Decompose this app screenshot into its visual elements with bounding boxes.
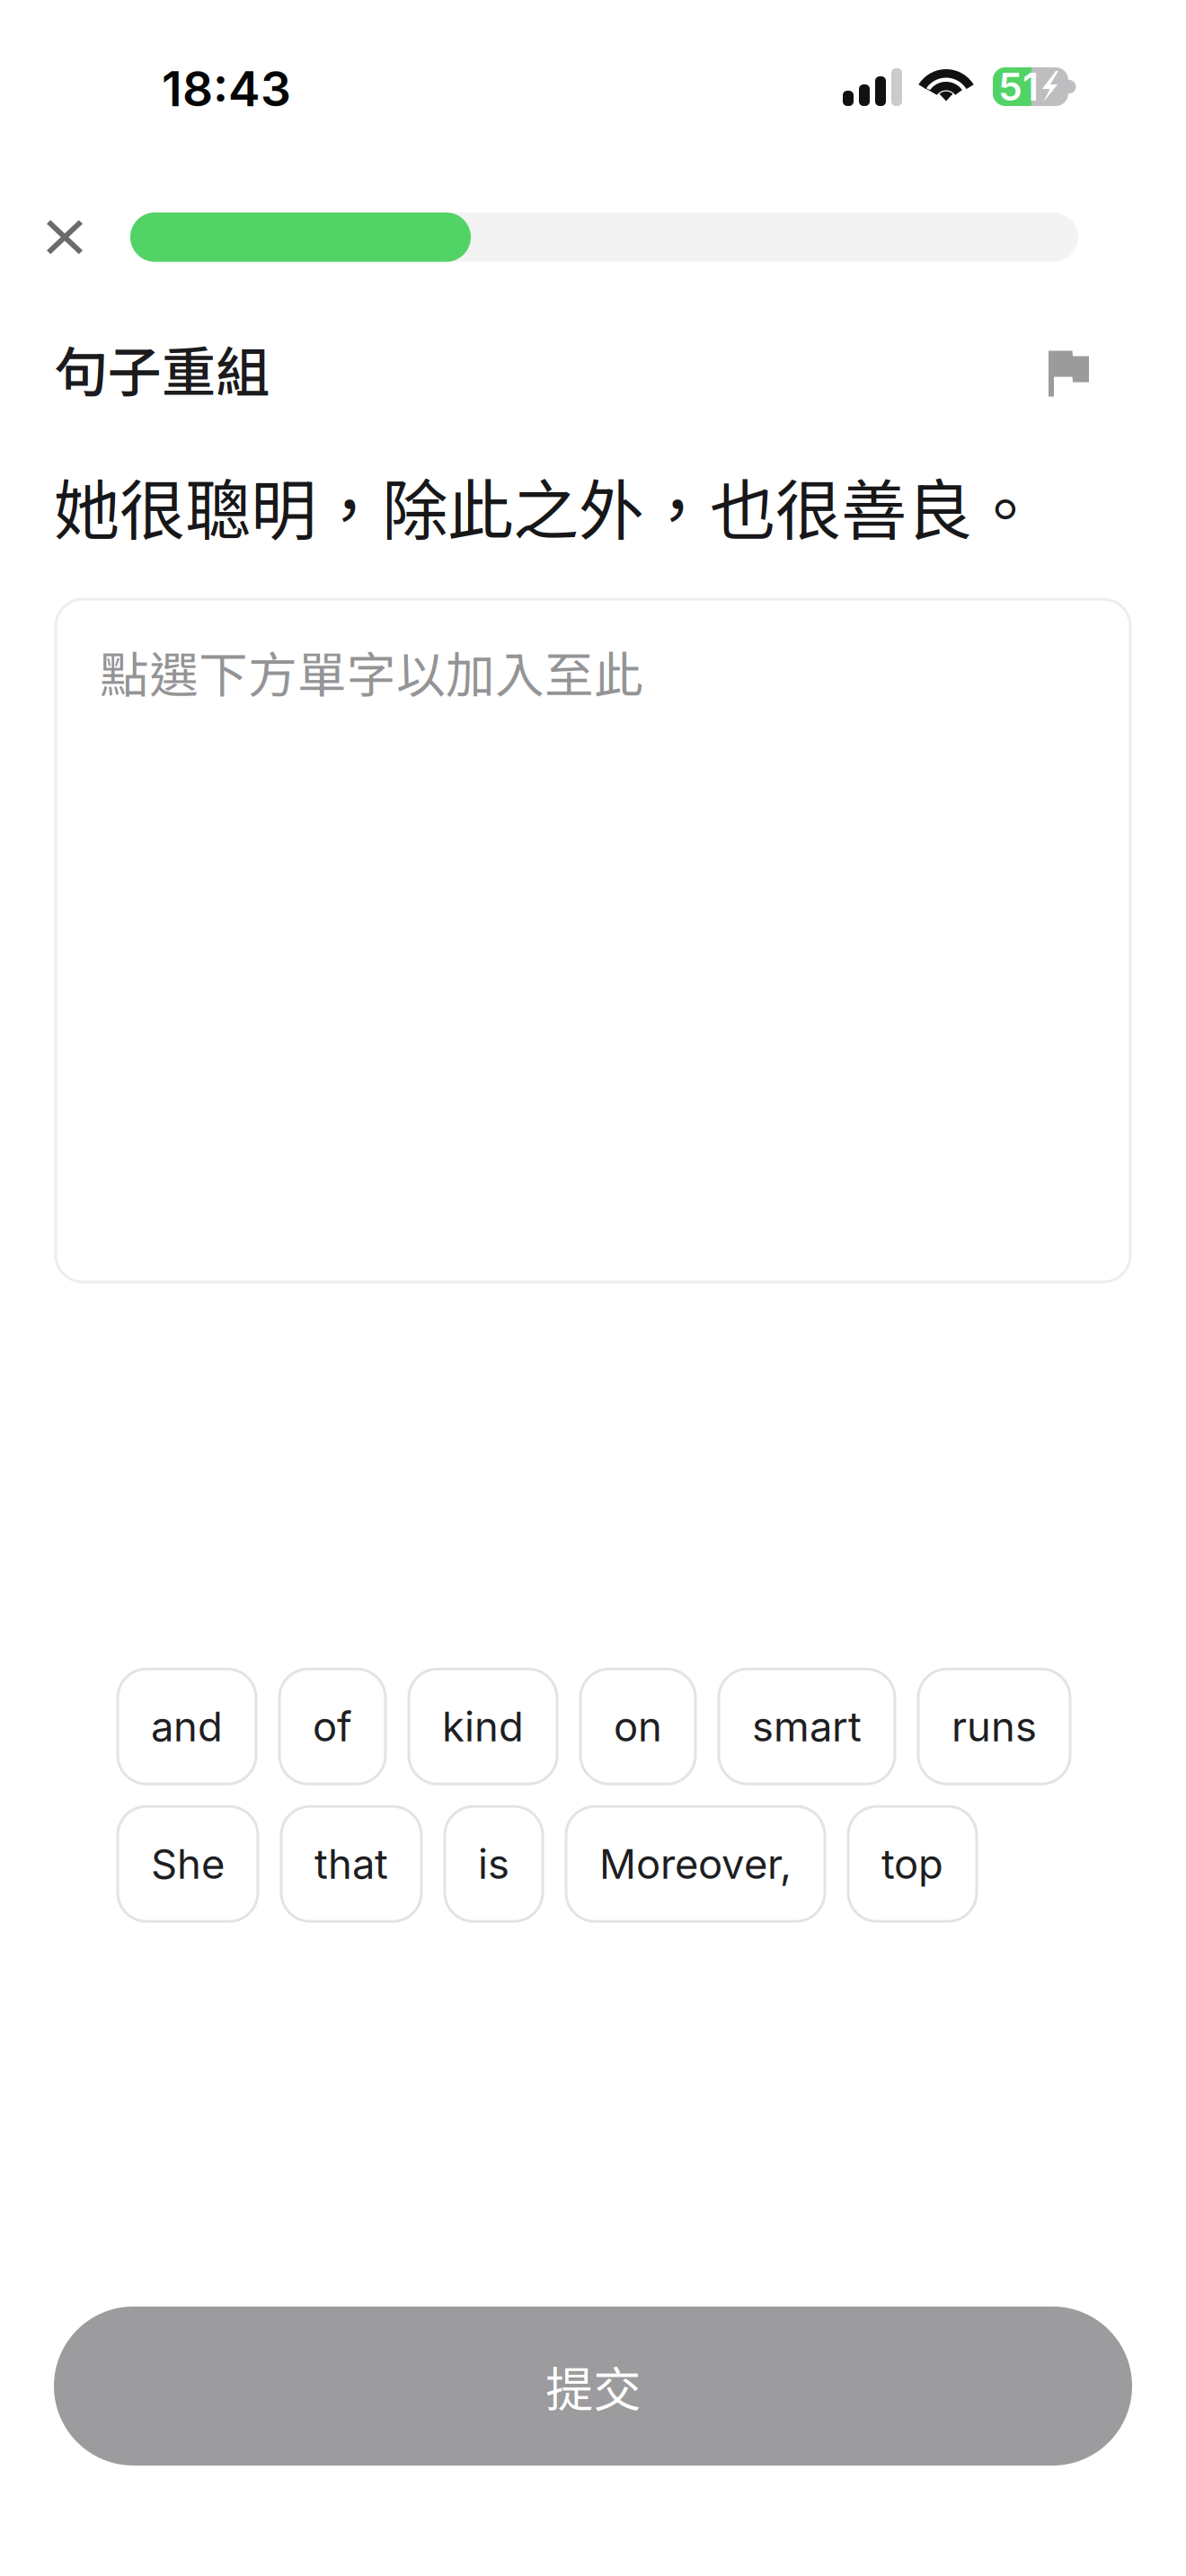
- staticText: 51: [998, 64, 1039, 110]
- button[interactable]: She: [118, 1806, 258, 1921]
- staticText: 點選下方單字以加入至此: [100, 636, 643, 707]
- button[interactable]: top: [848, 1806, 977, 1921]
- button[interactable]: runs: [918, 1669, 1070, 1784]
- button[interactable]: smart: [719, 1669, 895, 1784]
- staticText: 她很聰明，除此之外，也很善良。: [54, 458, 1038, 553]
- button[interactable]: Close: [47, 197, 130, 278]
- staticText: top: [881, 1839, 943, 1889]
- button[interactable]: kind: [409, 1669, 557, 1784]
- staticText: 提交: [545, 2351, 641, 2421]
- staticText: runs: [951, 1702, 1037, 1751]
- button[interactable]: 提交: [54, 2307, 1132, 2466]
- button[interactable]: Report a problem: [1049, 332, 1120, 404]
- staticText: and: [151, 1702, 223, 1751]
- button[interactable]: and: [118, 1669, 256, 1784]
- staticText: of: [313, 1702, 352, 1751]
- staticText: She: [151, 1839, 225, 1889]
- staticText: is: [478, 1839, 509, 1889]
- staticText: that: [314, 1839, 388, 1889]
- button[interactable]: on: [580, 1669, 695, 1784]
- staticText: Moreover,: [599, 1839, 792, 1889]
- staticText: on: [614, 1702, 662, 1751]
- button[interactable]: that: [281, 1806, 421, 1921]
- staticText: smart: [752, 1702, 862, 1751]
- button[interactable]: is: [445, 1806, 543, 1921]
- button[interactable]: of: [279, 1669, 385, 1784]
- button[interactable]: Moreover,: [566, 1806, 825, 1921]
- staticText: 18:43: [162, 60, 291, 118]
- staticText: 句子重組: [54, 329, 270, 407]
- staticText: kind: [442, 1702, 524, 1751]
